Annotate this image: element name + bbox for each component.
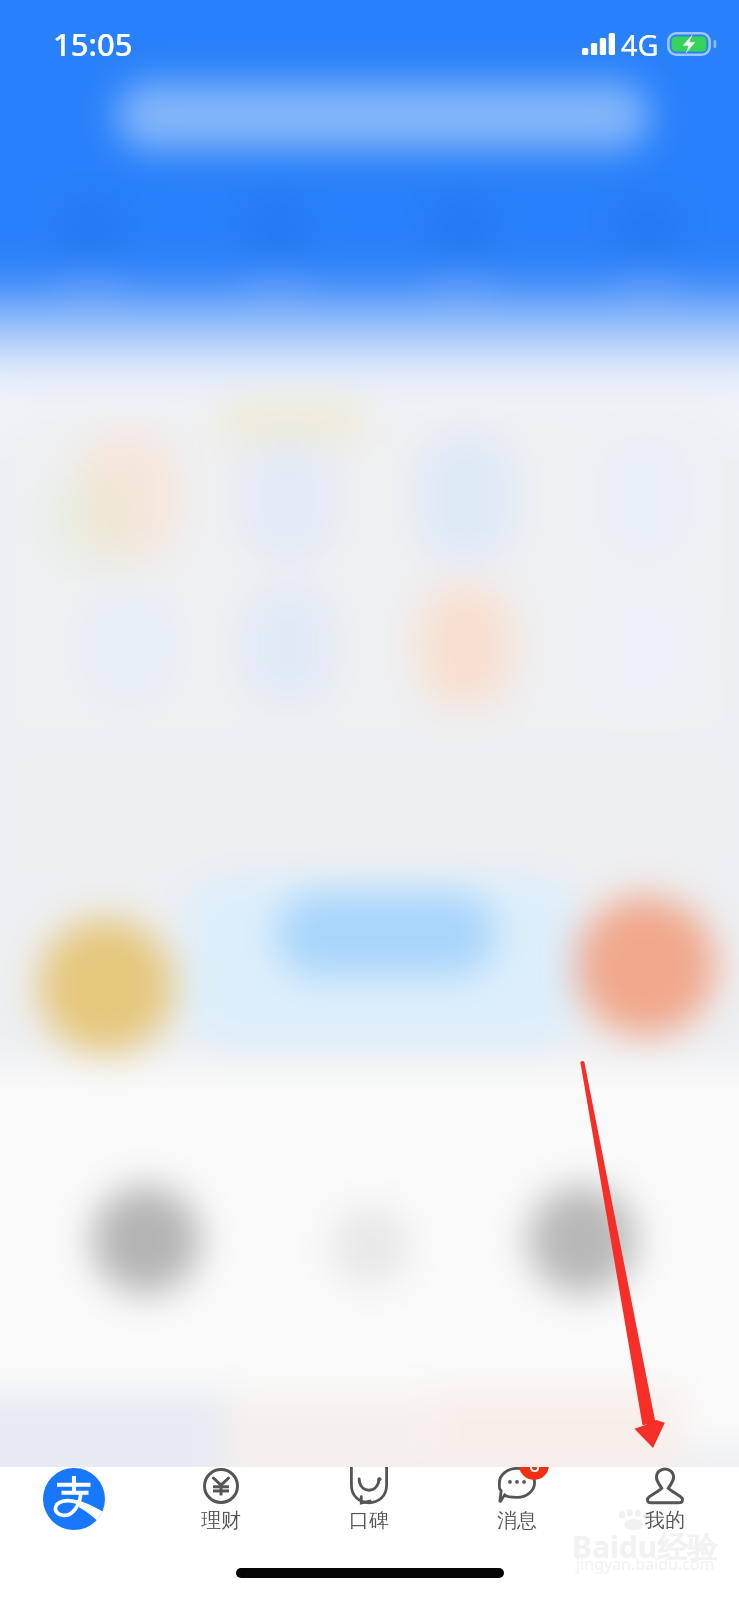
button[interactable]: 口碑 xyxy=(295,1467,443,1557)
button[interactable]: 我的 xyxy=(591,1467,739,1557)
button[interactable]: 6 xyxy=(443,1467,591,1557)
button[interactable]: 支付宝 首页 xyxy=(0,1467,147,1557)
staticText: 口碑 xyxy=(349,1508,389,1533)
staticText: 消息 xyxy=(497,1508,537,1533)
staticText: 我的 xyxy=(645,1508,685,1533)
staticText: 15:05 xyxy=(53,23,133,65)
staticText: Baidu经验 xyxy=(572,1526,718,1567)
button[interactable]: 理财 xyxy=(147,1467,295,1557)
staticText: jingyan.baidu.com xyxy=(576,1553,715,1575)
staticText: 6 xyxy=(529,1467,540,1478)
staticText: 理财 xyxy=(201,1508,241,1533)
staticText: 4G xyxy=(621,25,659,64)
